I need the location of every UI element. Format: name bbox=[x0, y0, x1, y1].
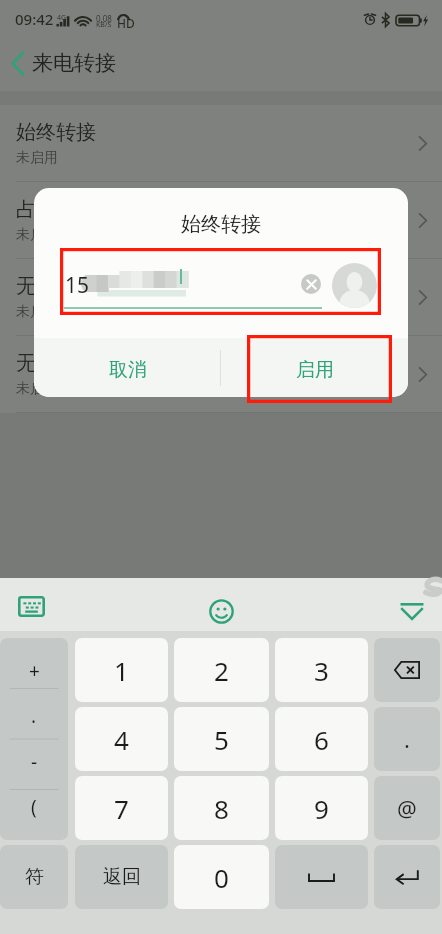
staticText: 4G bbox=[57, 13, 67, 23]
staticText: KB/S bbox=[96, 20, 112, 30]
button[interactable]: 符 bbox=[0, 845, 68, 909]
staticText: 9 bbox=[314, 791, 329, 826]
staticText: 启用 bbox=[296, 358, 334, 382]
button[interactable]: . bbox=[374, 707, 440, 771]
staticText: 未启用 bbox=[16, 303, 58, 321]
staticText: 1 bbox=[114, 653, 129, 688]
staticText: 无法接通转接 bbox=[16, 351, 136, 376]
staticText: 6 bbox=[314, 722, 329, 757]
staticText: 09:42 bbox=[15, 9, 54, 29]
staticText: 始终转接 bbox=[16, 120, 96, 145]
button[interactable]: @ bbox=[374, 776, 440, 840]
button[interactable]: 返回 bbox=[75, 845, 168, 909]
button[interactable]: 7 bbox=[75, 776, 168, 840]
button[interactable]: 1 bbox=[75, 638, 168, 702]
button[interactable]: 4 bbox=[75, 707, 168, 771]
button[interactable]: 取消 bbox=[34, 338, 221, 397]
button[interactable]: 无人接听转接 bbox=[0, 259, 442, 336]
staticText: 未启用 bbox=[16, 380, 58, 398]
button[interactable]: 0 bbox=[174, 845, 269, 909]
staticText: ( bbox=[31, 794, 37, 820]
button[interactable]: Enter bbox=[374, 845, 440, 909]
staticText: 占线转接 bbox=[16, 197, 96, 222]
button[interactable]: 9 bbox=[275, 776, 368, 840]
button[interactable]: 占线转接 bbox=[0, 182, 442, 259]
button[interactable]: Emoji bbox=[203, 593, 239, 629]
staticText: 5 bbox=[214, 722, 229, 757]
staticText: 0.08 bbox=[96, 13, 112, 24]
button[interactable]: 8 bbox=[174, 776, 269, 840]
staticText: 返回 bbox=[103, 865, 141, 889]
staticText: + bbox=[29, 658, 40, 684]
button[interactable]: Switch keyboard bbox=[13, 593, 50, 619]
staticText: 8 bbox=[214, 791, 229, 826]
button[interactable]: 无法接通转接 bbox=[0, 336, 442, 413]
button[interactable]: Choose contact bbox=[332, 263, 377, 308]
button[interactable]: Back bbox=[5, 50, 31, 76]
button[interactable]: 始终转接 bbox=[0, 105, 442, 182]
staticText: 无人接听转接 bbox=[16, 274, 136, 299]
staticText: 取消 bbox=[109, 358, 147, 382]
button[interactable]: Hide keyboard bbox=[394, 593, 430, 629]
button[interactable]: 启用 bbox=[221, 338, 408, 397]
staticText: . bbox=[404, 724, 410, 754]
button[interactable]: Backspace bbox=[374, 638, 440, 702]
button[interactable]: Space bbox=[275, 845, 368, 909]
staticText: . bbox=[31, 703, 37, 729]
staticText: 4 bbox=[114, 722, 129, 757]
button[interactable]: 3 bbox=[275, 638, 368, 702]
button[interactable]: 6 bbox=[275, 707, 368, 771]
staticText: 3 bbox=[314, 653, 329, 688]
staticText: @ bbox=[397, 793, 417, 823]
button[interactable]: 2 bbox=[174, 638, 269, 702]
button[interactable]: 5 bbox=[174, 707, 269, 771]
staticText: 0 bbox=[214, 860, 229, 895]
button[interactable]: Clear text bbox=[301, 274, 321, 294]
staticText: 未启用 bbox=[16, 149, 58, 167]
staticText: 符 bbox=[25, 865, 44, 889]
staticText: 2 bbox=[214, 653, 229, 688]
staticText: 来电转接 bbox=[32, 50, 116, 76]
button[interactable]: + bbox=[0, 638, 68, 840]
staticText: 未启用 bbox=[16, 226, 58, 244]
staticText: HD bbox=[117, 15, 135, 31]
staticText: 7 bbox=[114, 791, 129, 826]
staticText: - bbox=[31, 749, 38, 775]
staticText: 始终转接 bbox=[34, 212, 408, 237]
staticText: 15 bbox=[65, 271, 90, 300]
